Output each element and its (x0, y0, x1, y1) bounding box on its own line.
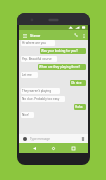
button[interactable]: No clue. Probably too easy holes (21, 96, 65, 102)
staticText: Ok nice (71, 81, 82, 85)
button[interactable]: When are they playing there? (38, 64, 86, 70)
button[interactable]: Menu (21, 32, 28, 39)
staticText: No clue. Probably too easy holes (22, 97, 64, 101)
button[interactable]: Attach (79, 135, 86, 142)
button[interactable]: Type message (30, 134, 79, 143)
staticText: Steve (30, 33, 41, 38)
staticText: Nice! (22, 113, 29, 117)
staticText: Yep. Beautiful course (22, 57, 52, 61)
button[interactable]: They weren't playing either (21, 88, 60, 94)
button[interactable]: More options (80, 32, 87, 39)
staticText: Let me (22, 73, 32, 77)
staticText: Was your looking for you!! (41, 49, 78, 53)
button[interactable]: Recents (69, 144, 78, 153)
staticText: They weren't playing either (22, 89, 59, 93)
button[interactable]: Back (30, 144, 39, 153)
button[interactable]: Home (49, 144, 58, 153)
button[interactable]: Emoji (21, 135, 28, 142)
staticText: Haha (75, 105, 83, 109)
button[interactable]: Ok nice (70, 80, 86, 86)
button[interactable]: Hi where are you (21, 40, 55, 46)
staticText: Type message (30, 137, 51, 141)
button[interactable]: Was your looking for you!! (40, 48, 86, 54)
staticText: When are they playing there? (39, 65, 81, 69)
button[interactable]: Yep. Beautiful course (21, 56, 57, 62)
button[interactable]: Let me (21, 72, 38, 78)
button[interactable]: Call (72, 31, 80, 39)
staticText: Hi where are you (22, 41, 46, 45)
button[interactable]: Haha (74, 104, 86, 110)
button[interactable]: Nice! (21, 112, 34, 118)
